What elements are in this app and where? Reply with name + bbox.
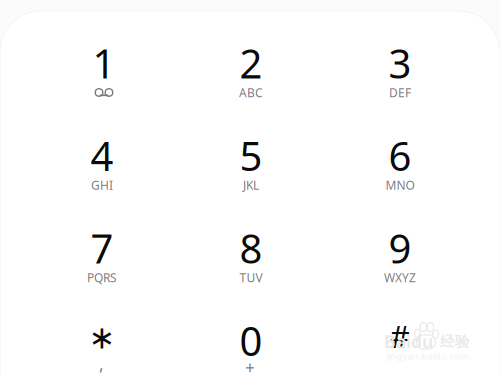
button[interactable]: 3 DEF	[325, 48, 474, 140]
staticText: 8	[239, 221, 262, 274]
staticText: 经验	[440, 332, 470, 350]
staticText: 5	[239, 129, 262, 182]
staticText: jingyan.baidu.com	[386, 350, 468, 362]
staticText: PQRS	[87, 269, 117, 285]
staticText: ABC	[239, 84, 263, 100]
button[interactable]: 9 WXYZ	[325, 233, 474, 325]
button[interactable]: 7 PQRS	[27, 233, 176, 325]
staticText: GHI	[91, 177, 113, 193]
staticText: +	[245, 356, 255, 375]
staticText: 2	[239, 36, 262, 89]
staticText: 7	[90, 221, 113, 274]
button[interactable]: pound	[325, 325, 474, 375]
staticText: Baidu	[384, 330, 433, 353]
button[interactable]: 4 GHI	[27, 140, 176, 233]
staticText: 1	[92, 36, 115, 89]
staticText: JKL	[243, 177, 259, 193]
staticText: DEF	[389, 84, 411, 100]
staticText: MNO	[385, 177, 414, 193]
staticText: ∗	[88, 319, 115, 356]
staticText: #	[390, 316, 410, 356]
button[interactable]: 2 ABC	[176, 48, 325, 140]
button[interactable]: 5 JKL	[176, 140, 325, 233]
staticText: 0	[239, 314, 262, 367]
button[interactable]: star	[27, 325, 176, 375]
staticText: 9	[388, 221, 411, 274]
button[interactable]: 1 voicemail	[27, 48, 176, 140]
staticText: 6	[388, 129, 411, 182]
staticText: ,	[99, 352, 104, 375]
button[interactable]: 6 MNO	[325, 140, 474, 233]
button[interactable]: 8 TUV	[176, 233, 325, 325]
staticText: TUV	[239, 269, 262, 285]
staticText: WXYZ	[384, 269, 416, 285]
staticText: 3	[388, 36, 411, 89]
button[interactable]: 0 plus	[176, 325, 325, 375]
staticText: 4	[90, 129, 113, 182]
